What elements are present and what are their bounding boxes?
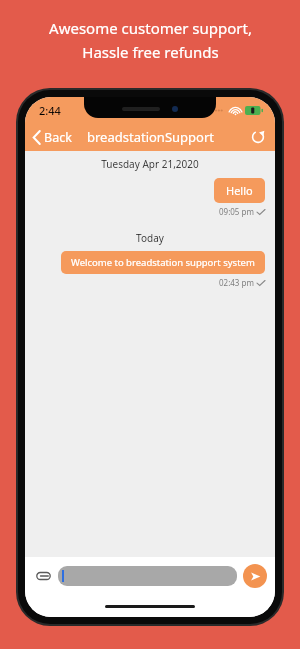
staticText: 09:05 pm <box>219 206 254 217</box>
staticText: 2:44 <box>39 103 61 118</box>
button[interactable]: Send <box>243 564 267 588</box>
staticText: Back <box>44 129 72 146</box>
staticText: Welcome to breadstation support system <box>71 256 255 269</box>
staticText: Hassle free refunds <box>82 42 219 62</box>
button[interactable]: Attach file <box>33 568 54 584</box>
button[interactable]: Refresh <box>251 130 275 144</box>
button[interactable]: Back <box>25 125 78 150</box>
staticText: Tuesday Apr 21,2020 <box>25 157 275 171</box>
button[interactable]: Hello <box>214 178 265 203</box>
staticText: 02:43 pm <box>219 277 254 288</box>
staticText: Today <box>25 231 275 245</box>
button[interactable] <box>58 566 237 586</box>
staticText: breadstationSupport <box>87 128 214 146</box>
staticText: Hello <box>226 183 253 198</box>
staticText: Awesome customer support, <box>49 18 252 38</box>
button[interactable]: Welcome to breadstation support system <box>61 251 265 274</box>
